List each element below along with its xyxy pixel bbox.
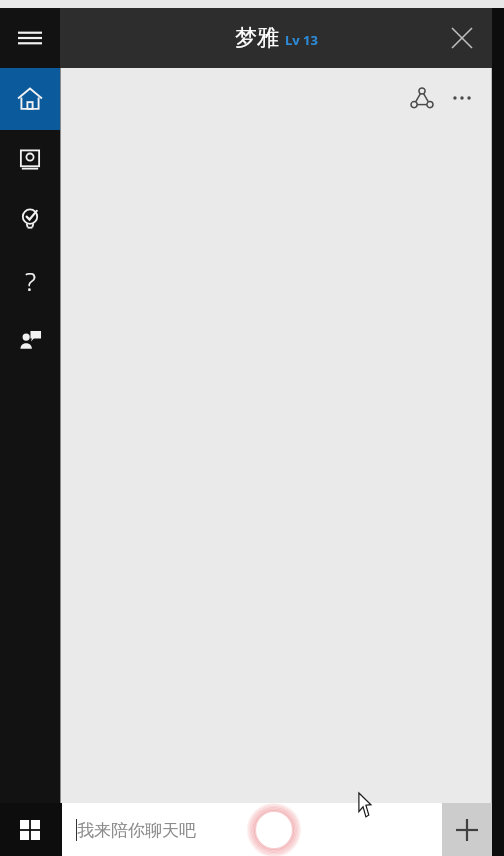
button[interactable]: Album	[0, 130, 60, 190]
button[interactable]: Menu	[0, 8, 60, 68]
staticText: 梦雅	[235, 24, 279, 52]
staticText: Lv 13	[285, 31, 318, 49]
button[interactable]: Tips	[0, 190, 60, 250]
button[interactable]: More options	[442, 78, 482, 118]
button[interactable]: Chat	[0, 310, 60, 370]
staticText: 我来陪你聊天吧	[77, 820, 196, 841]
button[interactable]: Close	[432, 8, 492, 68]
button[interactable]: Add	[442, 803, 492, 856]
staticText: ?	[25, 263, 36, 298]
button[interactable]: Help	[0, 250, 60, 310]
button[interactable]: 我来陪你聊天吧	[62, 803, 442, 856]
button[interactable]: Start	[0, 803, 60, 856]
button[interactable]: Share	[402, 78, 442, 118]
button[interactable]: Home	[0, 68, 60, 130]
